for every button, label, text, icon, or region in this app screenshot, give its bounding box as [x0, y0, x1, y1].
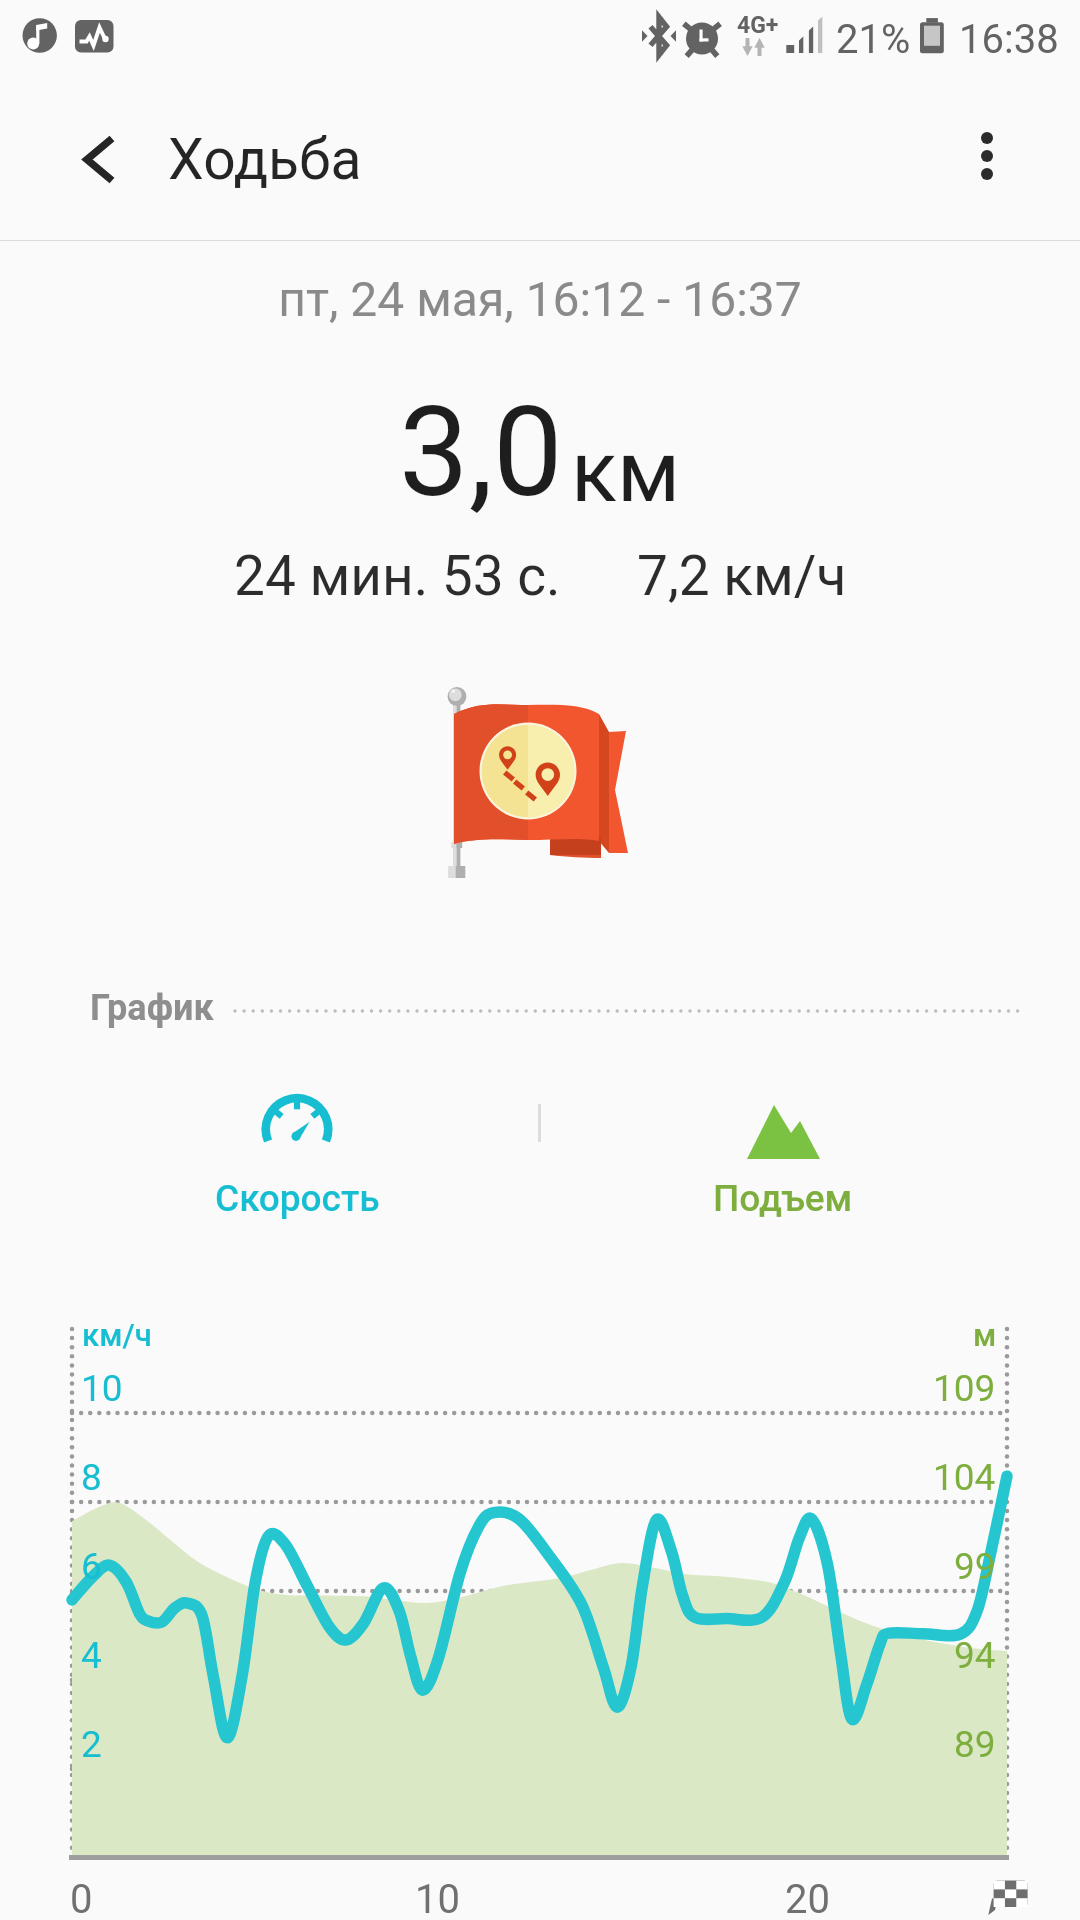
staticText: 109	[933, 1367, 996, 1410]
staticText: пт, 24 мая, 16:12 - 16:37	[0, 271, 1080, 327]
staticText: 0	[70, 1876, 93, 1920]
staticText: 10	[81, 1367, 123, 1410]
staticText: 104	[933, 1456, 996, 1499]
staticText: 4	[81, 1634, 102, 1677]
staticText: 20	[785, 1876, 830, 1920]
button[interactable]: Подъем	[652, 1085, 914, 1235]
staticText: 8	[81, 1456, 102, 1499]
staticText: 10	[415, 1876, 460, 1920]
staticText: 7,2 км/ч	[637, 544, 847, 608]
staticText: 99	[954, 1545, 996, 1588]
button[interactable]: More options	[951, 120, 1023, 192]
staticText: 21%	[836, 16, 911, 63]
staticText: Скорость	[215, 1177, 380, 1220]
staticText: м	[973, 1317, 997, 1353]
staticText: 3,0	[399, 380, 563, 525]
button[interactable]: Back	[61, 122, 133, 194]
staticText: км/ч	[82, 1317, 152, 1353]
staticText: 4G+	[737, 12, 779, 39]
staticText: 24 мин. 53 с.	[234, 544, 561, 608]
button[interactable]: Скорость	[166, 1085, 428, 1235]
staticText: 16:38	[959, 16, 1059, 63]
staticText: Ходьба	[168, 126, 362, 193]
staticText: 89	[954, 1723, 996, 1766]
staticText: 6	[81, 1545, 102, 1588]
staticText: График	[90, 987, 214, 1029]
staticText: 2	[81, 1723, 102, 1766]
staticText: 94	[954, 1634, 996, 1677]
staticText: км	[571, 422, 680, 522]
staticText: Подъем	[713, 1177, 853, 1220]
